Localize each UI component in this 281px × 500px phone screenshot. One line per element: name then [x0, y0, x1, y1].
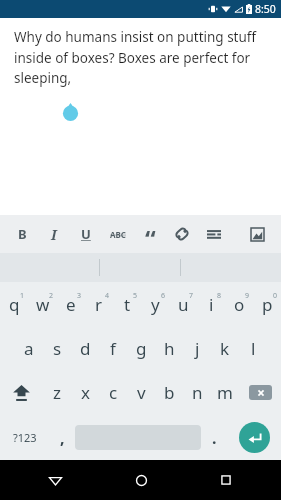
button[interactable]: e: [57, 282, 85, 326]
staticText: Why do humans insist on putting stuff in…: [14, 28, 267, 87]
staticText: 6: [161, 291, 166, 301]
button[interactable]: Insert image: [241, 215, 273, 253]
button[interactable]: m: [211, 370, 239, 415]
staticText: c: [109, 381, 118, 404]
button[interactable]: y: [141, 282, 169, 326]
button[interactable]: Home: [111, 460, 171, 500]
staticText: z: [53, 381, 61, 404]
button[interactable]: j: [183, 326, 211, 370]
button[interactable]: .: [201, 415, 227, 460]
button[interactable]: Strikethrough: [102, 215, 134, 253]
button[interactable]: c: [99, 370, 127, 415]
button[interactable]: i: [197, 282, 225, 326]
staticText: d: [80, 337, 91, 360]
staticText: ,: [60, 427, 65, 449]
button[interactable]: Italic: [38, 215, 70, 253]
staticText: r: [95, 293, 103, 316]
staticText: g: [136, 337, 147, 360]
staticText: I: [51, 225, 57, 244]
button[interactable]: f: [99, 326, 127, 370]
staticText: B: [18, 225, 27, 243]
staticText: “: [145, 222, 156, 255]
staticText: m: [217, 381, 233, 404]
staticText: v: [137, 381, 146, 404]
staticText: p: [262, 293, 273, 316]
staticText: t: [124, 293, 131, 316]
button[interactable]: Recents: [196, 460, 256, 500]
staticText: 1: [20, 291, 25, 301]
staticText: 8:50: [255, 2, 276, 16]
staticText: w: [36, 293, 50, 316]
button[interactable]: d: [71, 326, 99, 370]
button[interactable]: Quote: [134, 215, 166, 253]
button[interactable]: Link: [166, 215, 198, 253]
button[interactable]: b: [155, 370, 183, 415]
staticText: U: [81, 225, 91, 243]
button[interactable]: Bold: [6, 215, 38, 253]
staticText: y: [151, 293, 160, 316]
button[interactable]: Back: [25, 460, 85, 500]
staticText: h: [164, 337, 175, 360]
button[interactable]: Underline: [70, 215, 102, 253]
button[interactable]: v: [127, 370, 155, 415]
staticText: n: [192, 381, 203, 404]
button[interactable]: ?123: [0, 415, 49, 460]
staticText: a: [24, 337, 34, 360]
staticText: 2: [49, 291, 54, 301]
staticText: x: [81, 381, 90, 404]
button[interactable]: Shift: [0, 370, 43, 415]
button[interactable]: o: [225, 282, 253, 326]
staticText: 4: [105, 291, 110, 301]
button[interactable]: w: [29, 282, 57, 326]
button[interactable]: a: [15, 326, 43, 370]
staticText: l: [251, 337, 256, 360]
button[interactable]: Enter: [227, 415, 281, 460]
button[interactable]: g: [127, 326, 155, 370]
button[interactable]: q: [0, 282, 29, 326]
staticText: 0: [273, 291, 278, 301]
staticText: f: [110, 337, 116, 360]
staticText: 3: [77, 291, 82, 301]
button[interactable]: ,: [49, 415, 75, 460]
staticText: 7: [189, 291, 194, 301]
button[interactable]: t: [113, 282, 141, 326]
staticText: e: [66, 293, 76, 316]
staticText: .: [212, 427, 217, 449]
staticText: b: [164, 381, 175, 404]
staticText: q: [9, 293, 20, 316]
button[interactable]: n: [183, 370, 211, 415]
staticText: ABC: [110, 229, 126, 240]
staticText: i: [209, 293, 214, 316]
button[interactable]: s: [43, 326, 71, 370]
button[interactable]: z: [43, 370, 71, 415]
staticText: j: [195, 337, 200, 360]
button[interactable]: List: [198, 215, 230, 253]
button[interactable]: r: [85, 282, 113, 326]
button[interactable]: u: [169, 282, 197, 326]
button[interactable]: k: [211, 326, 239, 370]
button[interactable]: x: [71, 370, 99, 415]
button[interactable]: p: [253, 282, 281, 326]
button[interactable]: Backspace: [239, 370, 281, 415]
staticText: 9: [245, 291, 250, 301]
button[interactable]: h: [155, 326, 183, 370]
staticText: k: [220, 337, 230, 360]
staticText: ?123: [13, 430, 37, 445]
staticText: o: [234, 293, 245, 316]
button[interactable]: l: [239, 326, 267, 370]
staticText: u: [178, 293, 189, 316]
staticText: s: [53, 337, 62, 360]
staticText: 5: [133, 291, 138, 301]
staticText: 8: [217, 291, 222, 301]
